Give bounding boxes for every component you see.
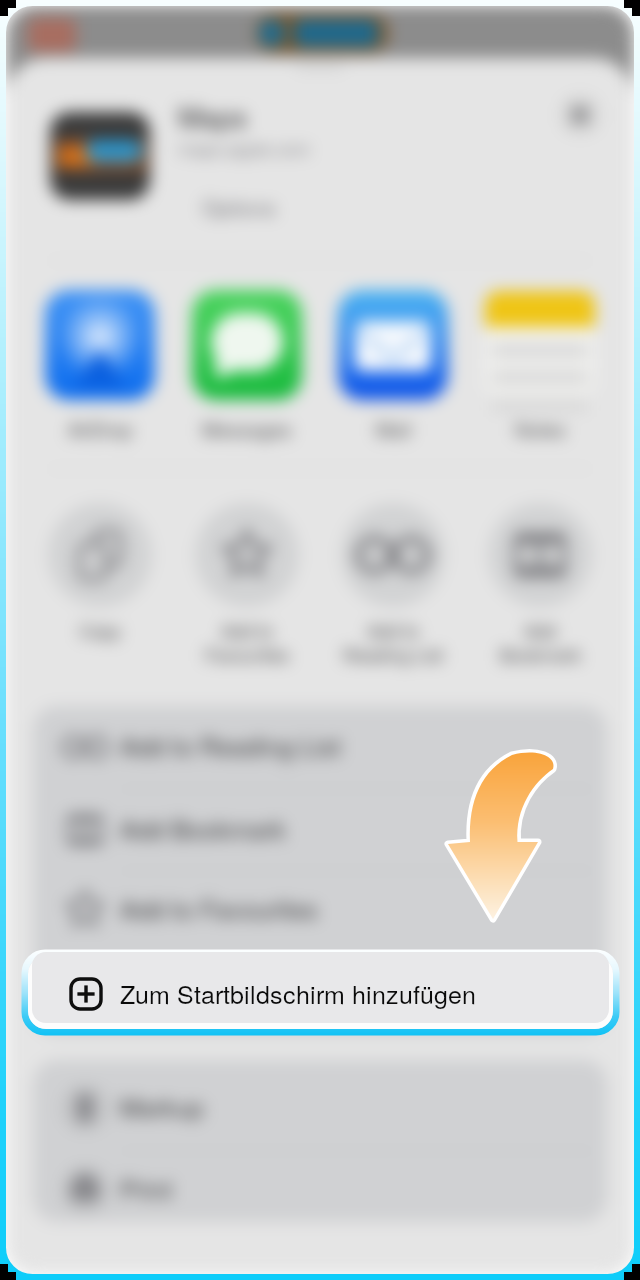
button[interactable]: Zum Startbildschirm hinzufuegen [0,0,640,1280]
